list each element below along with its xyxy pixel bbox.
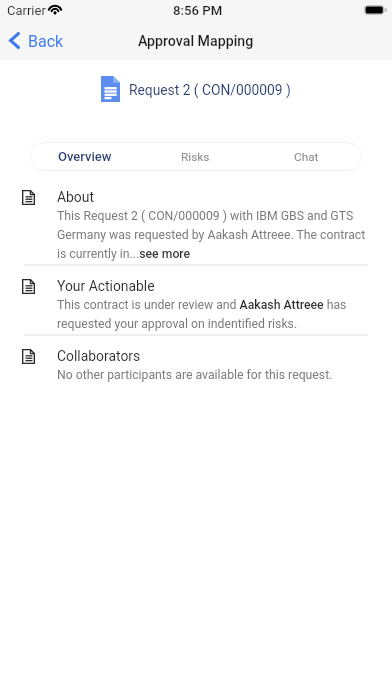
button[interactable]: Risks bbox=[140, 142, 251, 171]
staticText: Request 2 ( CON/000009 ) bbox=[129, 82, 291, 98]
staticText: Collaborators bbox=[57, 348, 141, 364]
staticText: No other participants are available for … bbox=[57, 368, 368, 382]
staticText: Overview bbox=[58, 149, 112, 164]
staticText: Your Actionable bbox=[57, 278, 155, 294]
staticText: About bbox=[57, 189, 94, 205]
staticText: Chat bbox=[294, 150, 319, 164]
staticText: This contract is under review and Aakash… bbox=[57, 298, 368, 331]
staticText: Risks bbox=[181, 150, 210, 164]
staticText: Carrier bbox=[7, 3, 46, 18]
staticText: 8:56 PM bbox=[173, 3, 223, 18]
staticText: This Request 2 ( CON/000009 ) with IBM G… bbox=[57, 209, 368, 261]
staticText: Back bbox=[28, 32, 64, 51]
button[interactable]: Back bbox=[0, 28, 78, 55]
other: Battery bbox=[364, 5, 387, 15]
other: Wi-Fi bbox=[47, 3, 63, 15]
staticText: Approval Mapping bbox=[138, 33, 254, 50]
button[interactable]: Chat bbox=[251, 142, 362, 171]
button[interactable]: Overview bbox=[30, 142, 140, 171]
